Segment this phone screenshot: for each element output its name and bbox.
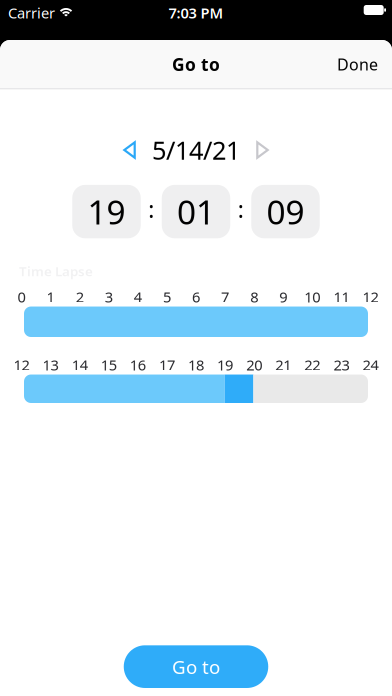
staticText: 18 [188, 355, 204, 374]
staticText: 19 [217, 355, 233, 374]
staticText: 1 [47, 287, 55, 306]
button[interactable]: 09 [251, 185, 320, 238]
staticText: 24 [362, 355, 378, 374]
staticText: 14 [72, 355, 88, 374]
staticText: 4 [134, 287, 142, 306]
staticText: 21 [275, 355, 291, 374]
staticText: : [238, 194, 244, 224]
staticText: Go to [172, 654, 220, 679]
staticText: 9 [279, 287, 287, 306]
button[interactable]: Next day [256, 141, 269, 159]
staticText: 6 [192, 287, 200, 306]
staticText: 22 [304, 355, 320, 374]
button[interactable]: Previous day [123, 141, 136, 159]
staticText: 13 [43, 355, 59, 374]
staticText: 11 [333, 287, 349, 306]
staticText: 19 [87, 189, 125, 234]
staticText: 3 [105, 287, 113, 306]
staticText: 12 [13, 355, 29, 374]
staticText: Done [337, 54, 378, 75]
button[interactable]: 01 [162, 185, 230, 238]
staticText: 23 [333, 355, 349, 374]
staticText: 16 [130, 355, 146, 374]
button[interactable]: Done [337, 54, 378, 75]
staticText: 17 [159, 355, 175, 374]
staticText: : [148, 194, 154, 224]
staticText: 5 [163, 287, 171, 306]
staticText: 20 [246, 355, 262, 374]
staticText: 10 [304, 287, 320, 306]
button[interactable]: Go to [124, 645, 268, 688]
staticText: 5/14/21 [152, 133, 240, 167]
staticText: 15 [101, 355, 117, 374]
staticText: 12 [362, 287, 378, 306]
staticText: 2 [76, 287, 84, 306]
staticText: Carrier [8, 3, 55, 22]
staticText: 7:03 PM [168, 3, 223, 22]
staticText: 0 [17, 287, 25, 306]
staticText: 8 [250, 287, 258, 306]
staticText: 09 [266, 189, 304, 234]
staticText: Go to [172, 53, 220, 76]
staticText: Time Lapse [19, 262, 93, 280]
staticText: 01 [177, 189, 215, 234]
button[interactable]: 19 [72, 185, 141, 238]
staticText: 7 [221, 287, 229, 306]
